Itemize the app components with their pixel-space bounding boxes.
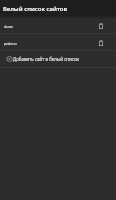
button[interactable]: Удалить bbox=[96, 37, 106, 47]
staticText: yandex.ru bbox=[4, 42, 96, 46]
button[interactable]: yandex.ru bbox=[0, 34, 116, 50]
button[interactable]: Добавить сайт в белый список bbox=[0, 51, 116, 67]
staticText: Добавить сайт в белый список bbox=[13, 56, 79, 62]
button[interactable]: Удалить bbox=[96, 20, 106, 30]
staticText: vk.com bbox=[4, 25, 96, 29]
button[interactable]: vk.com bbox=[0, 17, 116, 33]
staticText: Белый список сайтов bbox=[3, 4, 67, 12]
